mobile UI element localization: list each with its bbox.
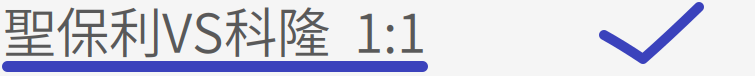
button[interactable]: Confirmed	[0, 0, 704, 70]
button[interactable]: 聖保利VS科隆 1:1	[0, 0, 500, 76]
staticText: 聖保利VS科隆 1:1	[3, 0, 426, 68]
